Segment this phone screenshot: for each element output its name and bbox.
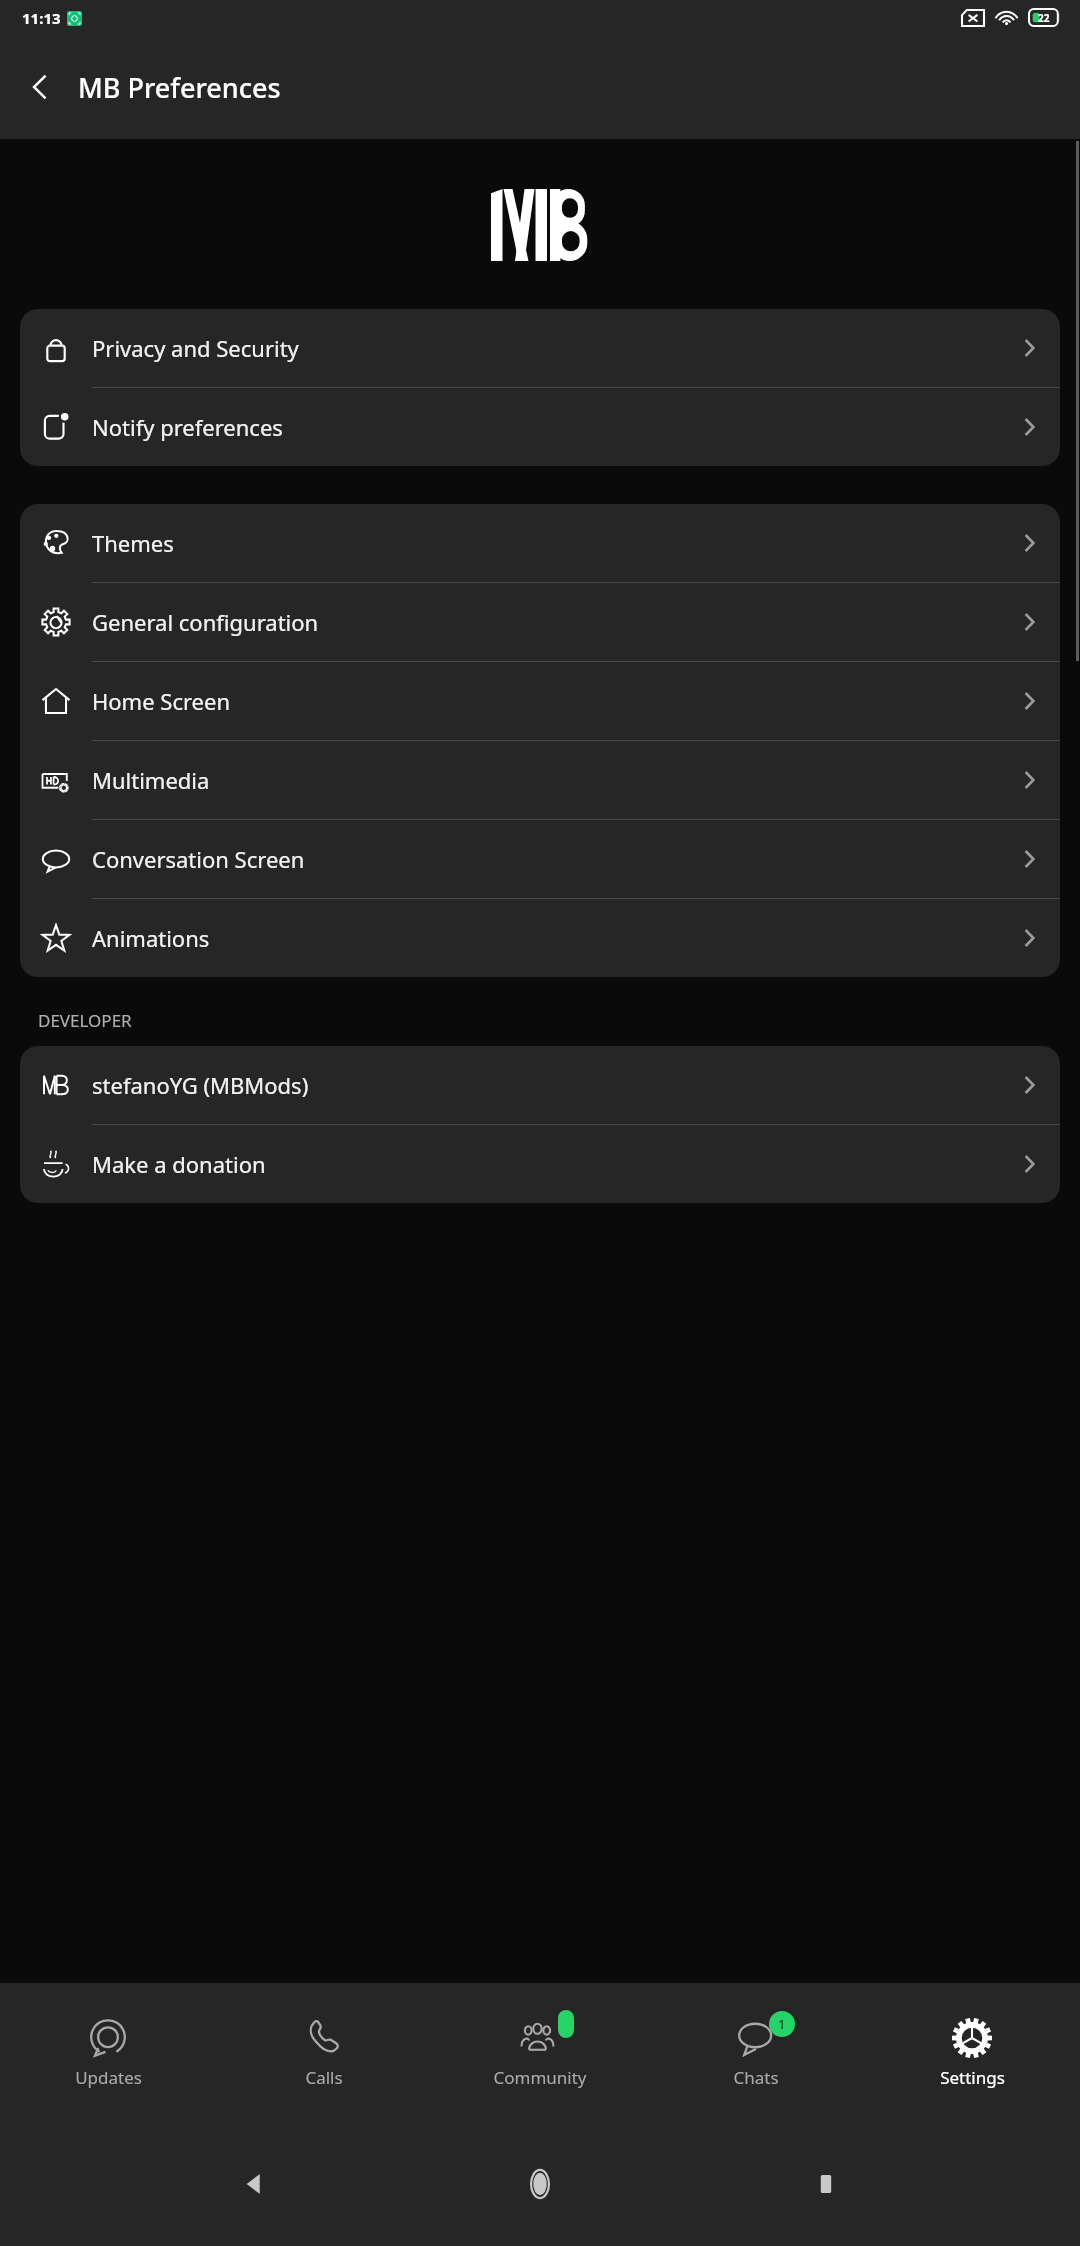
staticText: General configuration [92,607,998,637]
button[interactable]: Updates [0,1983,216,2122]
staticText: Conversation Screen [92,844,998,874]
button[interactable]: Animations [20,899,1060,977]
staticText: Make a donation [92,1149,998,1179]
button[interactable]: Home Screen [20,662,1060,740]
staticText: Home Screen [92,686,998,716]
staticText: 1 [778,2015,786,2033]
staticText: stefanoYG (MBMods) [92,1070,998,1100]
button[interactable]: stefanoYG (MBMods) [20,1046,1060,1124]
button[interactable]: Notify preferences [20,388,1060,466]
button[interactable]: Themes [20,504,1060,582]
staticText: Updates [75,2066,142,2089]
staticText: DEVELOPER [38,1009,132,1032]
button[interactable]: Calls [216,1983,432,2122]
staticText: 22 [1038,11,1050,25]
button[interactable]: Settings [864,1983,1080,2122]
staticText: Privacy and Security [92,333,998,363]
staticText: Notify preferences [92,412,998,442]
staticText: Community [493,2066,587,2089]
button[interactable]: Multimedia [20,741,1060,819]
button[interactable]: Make a donation [20,1125,1060,1203]
button[interactable]: Community [432,1983,648,2122]
staticText: Settings [940,2066,1005,2089]
staticText: Themes [92,528,998,558]
button[interactable]: Privacy and Security [20,309,1060,387]
button[interactable]: Back [12,59,68,115]
staticText: Chats [733,2066,779,2089]
button[interactable]: Recent apps [794,2152,858,2216]
button[interactable]: General configuration [20,583,1060,661]
staticText: Animations [92,923,998,953]
staticText: MB Preferences [78,69,281,106]
staticText: Multimedia [92,765,998,795]
staticText: Calls [305,2066,343,2089]
button[interactable]: Back [222,2152,286,2216]
staticText: 11:13 [22,8,61,28]
button[interactable]: 1 [648,1983,864,2122]
button[interactable]: Conversation Screen [20,820,1060,898]
button[interactable]: Home [508,2152,572,2216]
